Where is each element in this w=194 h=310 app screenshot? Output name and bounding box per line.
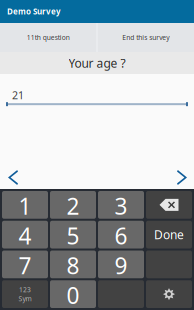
staticText: 4 xyxy=(18,221,31,249)
button[interactable]: 2 xyxy=(50,191,96,219)
button[interactable]: 6 xyxy=(98,221,144,249)
button[interactable]: 7 xyxy=(2,250,48,278)
staticText: 123 xyxy=(19,285,31,294)
staticText: Your age ? xyxy=(68,55,125,71)
staticText: Done xyxy=(154,227,184,243)
staticText: 11th question xyxy=(27,33,70,42)
button[interactable]: 9 xyxy=(98,250,144,278)
staticText: 1 xyxy=(18,191,31,219)
button[interactable]: 8 xyxy=(50,250,96,278)
staticText: 5 xyxy=(66,221,79,249)
button[interactable]: 123 xyxy=(2,280,48,308)
button[interactable]: End this survey xyxy=(97,23,194,52)
staticText: End this survey xyxy=(122,33,169,42)
button[interactable]: Next question xyxy=(177,170,187,185)
button[interactable]: 0 xyxy=(50,280,96,308)
staticText: 2 xyxy=(66,191,79,219)
staticText: 3 xyxy=(114,191,127,219)
staticText: 0 xyxy=(66,280,79,308)
button[interactable]: 4 xyxy=(2,221,48,249)
staticText: 6 xyxy=(114,221,127,249)
button[interactable]: 3 xyxy=(98,191,144,219)
button[interactable]: 5 xyxy=(50,221,96,249)
staticText: 21 xyxy=(12,88,24,102)
button[interactable]: Previous question xyxy=(8,170,18,185)
button[interactable]: 11th question xyxy=(0,23,96,52)
staticText: 8 xyxy=(66,250,79,278)
staticText: Sym xyxy=(18,294,31,303)
button[interactable]: Delete xyxy=(146,191,192,219)
staticText: Demo Survey xyxy=(7,6,61,17)
staticText: 7 xyxy=(18,250,31,278)
staticText: 9 xyxy=(114,250,127,278)
button[interactable]: Keyboard settings xyxy=(146,280,192,308)
button[interactable]: 1 xyxy=(2,191,48,219)
button[interactable]: Done xyxy=(146,221,192,249)
